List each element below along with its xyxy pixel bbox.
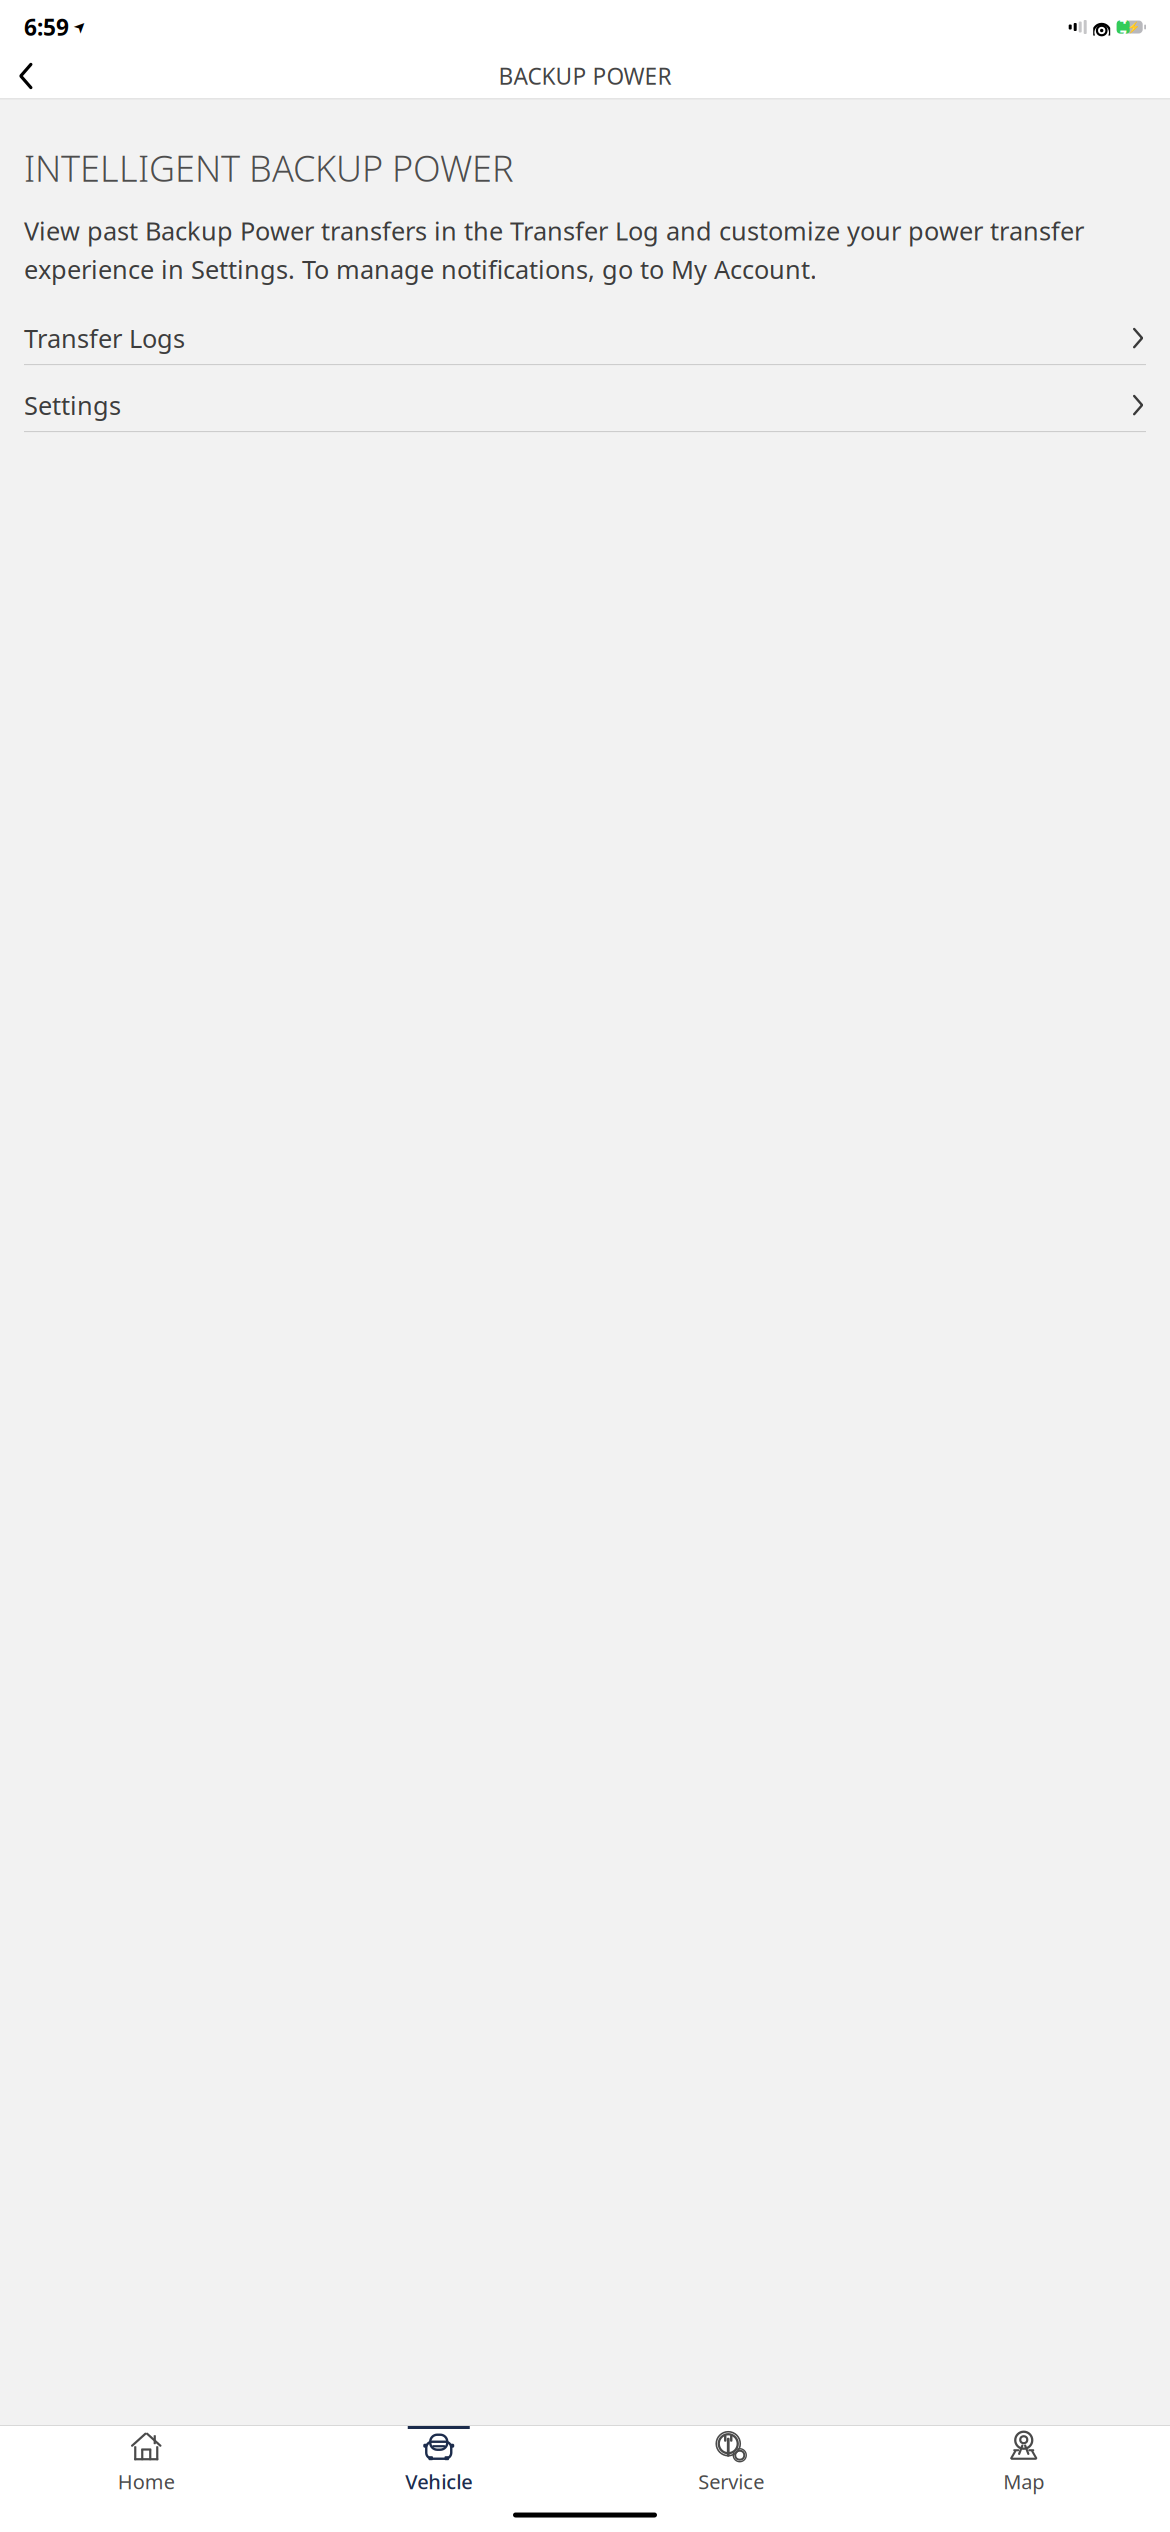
staticText: Vehicle bbox=[405, 2468, 472, 2495]
button[interactable]: Back bbox=[0, 54, 52, 98]
staticText: Transfer Logs bbox=[24, 321, 185, 355]
staticText: Map bbox=[1003, 2468, 1044, 2495]
button[interactable]: Service bbox=[585, 2426, 877, 2498]
staticText: 47 bbox=[1120, 11, 1127, 43]
staticText: Settings bbox=[24, 388, 121, 422]
staticText: Home bbox=[118, 2468, 175, 2495]
staticText: BACKUP POWER bbox=[498, 61, 671, 91]
staticText: ➤ bbox=[74, 19, 86, 35]
staticText: ⚡ bbox=[1127, 21, 1140, 33]
button[interactable]: Vehicle bbox=[292, 2426, 585, 2498]
staticText: Service bbox=[698, 2468, 764, 2495]
button[interactable]: Home bbox=[0, 2426, 292, 2498]
button[interactable]: Transfer Logs bbox=[0, 312, 1170, 364]
button[interactable]: Map bbox=[877, 2426, 1170, 2498]
staticText: View past Backup Power transfers in the … bbox=[24, 214, 1084, 286]
staticText: 6:59 bbox=[24, 12, 69, 42]
button[interactable]: Settings bbox=[0, 379, 1170, 431]
staticText: INTELLIGENT BACKUP POWER bbox=[24, 144, 514, 192]
